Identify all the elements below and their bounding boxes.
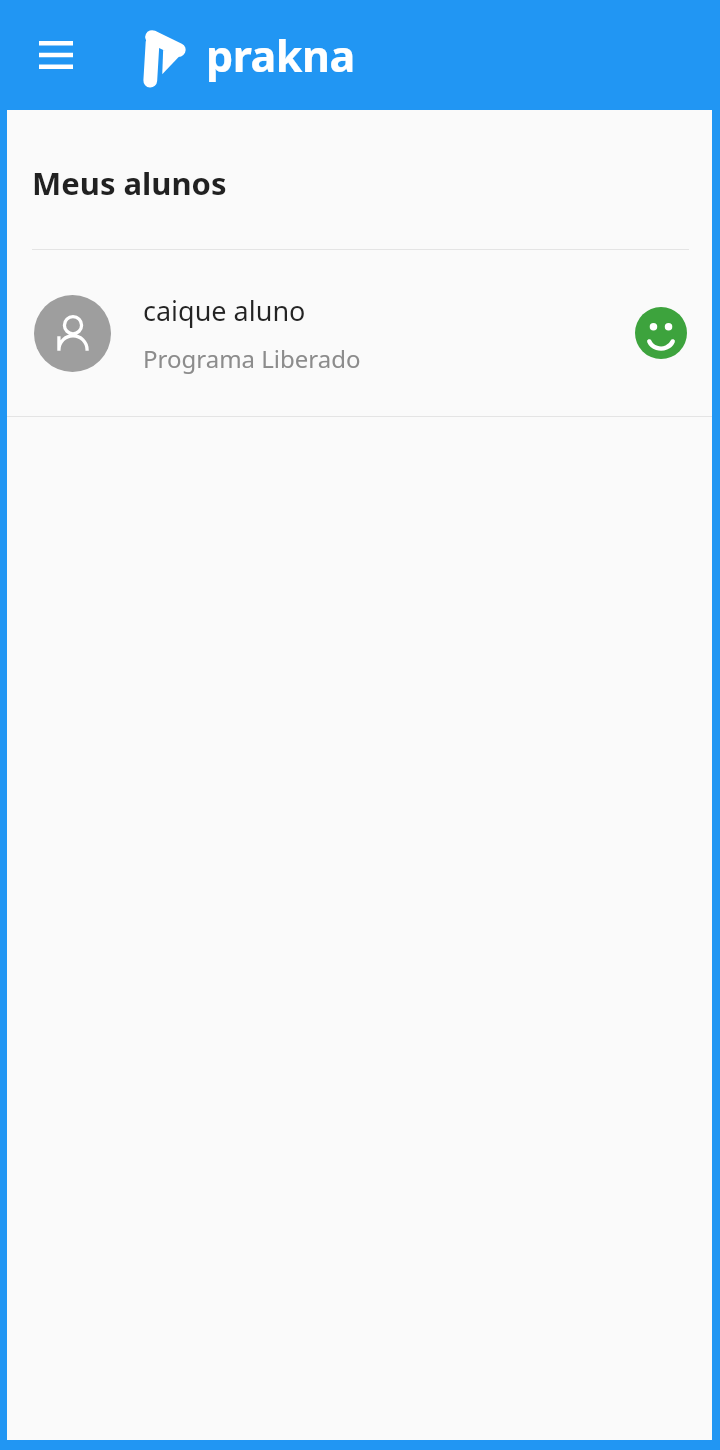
staticText: prakna — [206, 26, 355, 85]
staticText: caique aluno — [143, 292, 306, 329]
other: Prakna logo — [142, 23, 188, 87]
staticText: Programa Liberado — [143, 342, 361, 375]
staticText: Meus alunos — [32, 162, 227, 204]
button[interactable]: caique aluno — [7, 250, 712, 416]
button[interactable]: Open navigation menu — [24, 23, 88, 87]
button[interactable]: Program released, student status — [635, 307, 687, 359]
